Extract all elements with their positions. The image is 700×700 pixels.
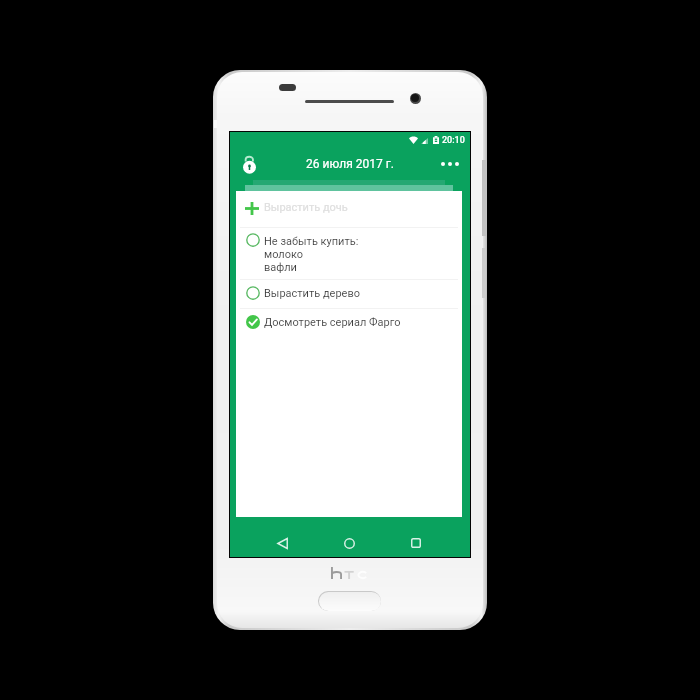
button[interactable]: Вырастить дерево — [236, 279, 462, 307]
staticText: 20:10 — [442, 135, 465, 146]
button[interactable]: Досмотреть сериал Фарго — [236, 308, 462, 339]
staticText: Вырастить дерево — [264, 287, 360, 300]
button[interactable]: Home — [325, 519, 373, 557]
button[interactable]: Вырастить дочь — [236, 191, 462, 227]
staticText: вафли — [264, 261, 297, 274]
button[interactable]: Lock — [234, 146, 264, 176]
staticText: 26 июля 2017 г. — [230, 157, 470, 171]
button[interactable]: Recent apps — [392, 519, 440, 557]
button[interactable]: Не забыть купить: — [236, 227, 462, 280]
staticText: Не забыть купить: — [264, 235, 359, 248]
staticText: Досмотреть сериал Фарго — [264, 316, 401, 329]
staticText: молоко — [264, 248, 304, 261]
button[interactable]: More options — [437, 151, 463, 177]
button[interactable]: Back — [258, 519, 306, 557]
staticText: Вырастить дочь — [264, 201, 348, 214]
